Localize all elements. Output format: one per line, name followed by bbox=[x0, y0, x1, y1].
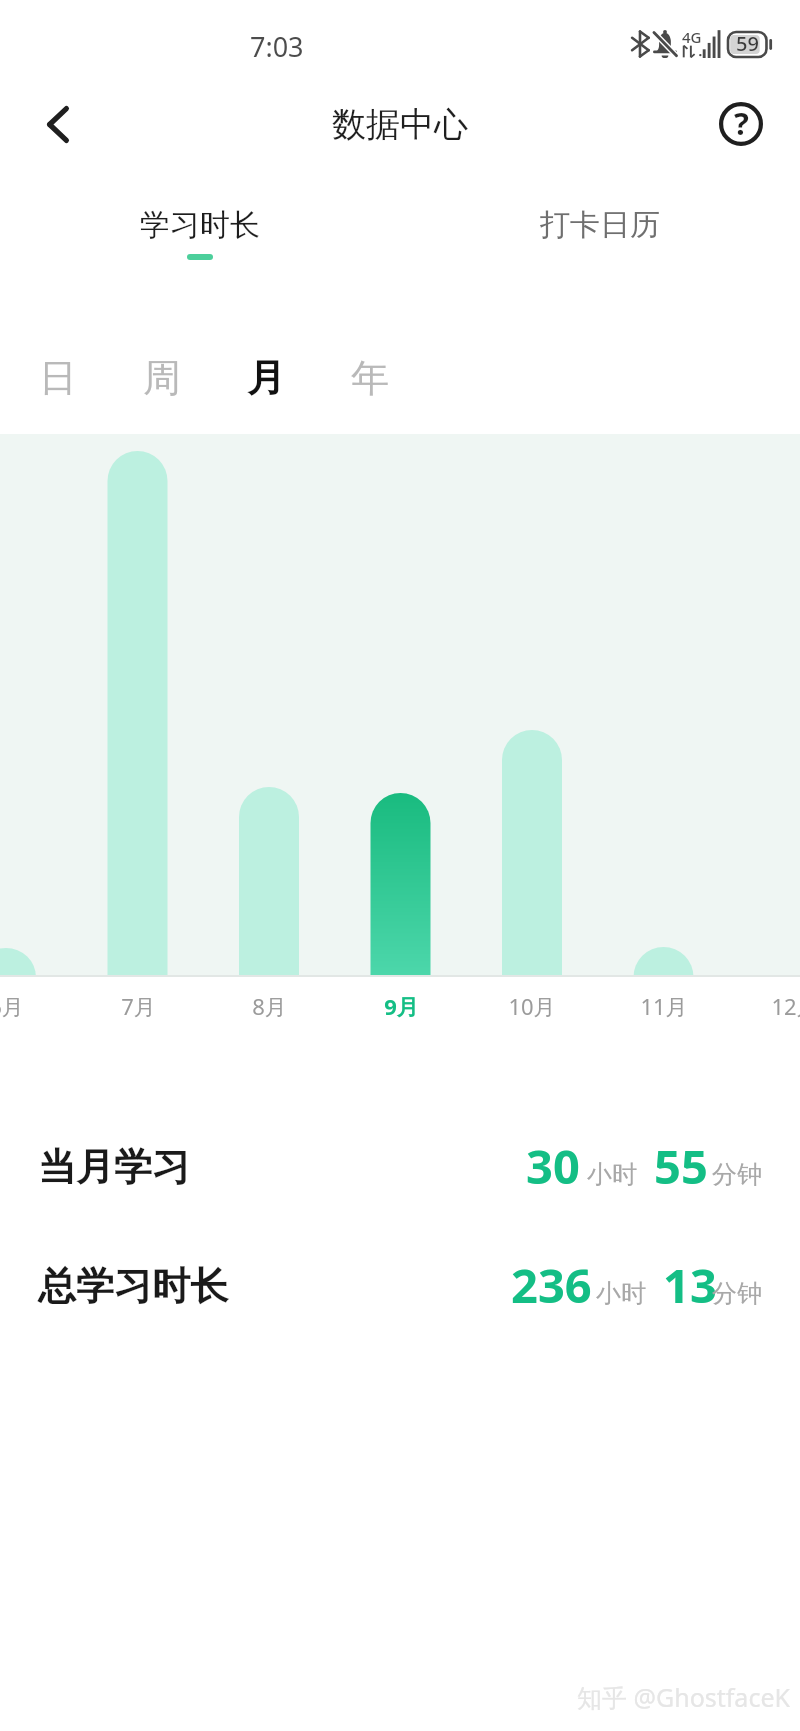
staticText: ? bbox=[734, 102, 749, 144]
staticText: 年 bbox=[351, 354, 389, 402]
staticText: 分钟 bbox=[712, 1159, 762, 1190]
staticText: 日 bbox=[39, 354, 77, 402]
staticText: 小时 bbox=[587, 1159, 637, 1190]
button[interactable]: Help bbox=[705, 88, 777, 160]
button[interactable]: 当月学习 bbox=[24, 1129, 284, 1205]
staticText: 数据中心 bbox=[332, 103, 468, 146]
button[interactable]: 打卡日历 bbox=[520, 200, 680, 256]
staticText: 7:03 bbox=[250, 28, 304, 65]
button[interactable]: 日 bbox=[24, 350, 92, 406]
staticText: 6月 bbox=[0, 991, 24, 1021]
staticText: 小时 bbox=[596, 1278, 646, 1309]
staticText: 59 bbox=[736, 30, 759, 57]
staticText: 55 bbox=[654, 1134, 708, 1198]
staticText: 30 bbox=[526, 1134, 580, 1198]
staticText: 8月 bbox=[252, 991, 287, 1021]
staticText: 13 bbox=[663, 1253, 717, 1317]
staticText: 10月 bbox=[508, 991, 556, 1021]
staticText: 知乎 @GhostfaceK bbox=[577, 1680, 790, 1714]
button[interactable]: 月 bbox=[232, 350, 300, 406]
button[interactable]: 学习时长 bbox=[120, 200, 280, 272]
button[interactable]: 总学习时长 bbox=[24, 1248, 284, 1324]
staticText: 周 bbox=[143, 354, 181, 402]
staticText: 当月学习 bbox=[38, 1143, 190, 1191]
staticText: 236 bbox=[511, 1253, 592, 1317]
button[interactable]: 周 bbox=[128, 350, 196, 406]
staticText: 4G bbox=[682, 27, 702, 47]
staticText: 9月 bbox=[384, 991, 419, 1021]
staticText: 12月 bbox=[771, 991, 800, 1021]
staticText: 分钟 bbox=[712, 1278, 762, 1309]
staticText: 学习时长 bbox=[140, 206, 260, 244]
staticText: 月 bbox=[247, 354, 285, 402]
staticText: 总学习时长 bbox=[38, 1262, 228, 1310]
staticText: 打卡日历 bbox=[540, 206, 660, 244]
staticText: 7月 bbox=[121, 991, 156, 1021]
staticText: 11月 bbox=[640, 991, 688, 1021]
button[interactable]: 年 bbox=[336, 350, 404, 406]
button[interactable]: Back bbox=[22, 88, 94, 160]
